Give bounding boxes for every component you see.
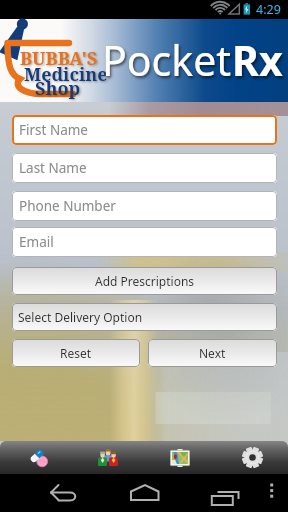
button[interactable]: First Name [12, 115, 277, 145]
staticText: 4:29 [256, 1, 281, 18]
button[interactable]: Email [12, 227, 277, 257]
button[interactable]: Recent apps [172, 474, 258, 512]
staticText: Last Name [19, 159, 87, 177]
staticText: Reset [60, 345, 92, 361]
staticText: Next [199, 345, 226, 361]
button[interactable]: Settings [216, 441, 288, 474]
button[interactable]: Select Delivery Option [12, 303, 277, 331]
button[interactable]: More options [258, 474, 288, 512]
staticText: Medicine [24, 62, 108, 87]
button[interactable]: Last Name [12, 153, 277, 183]
button[interactable]: Phone Number [12, 191, 277, 221]
button[interactable]: Family [72, 441, 144, 474]
button[interactable]: Reset [12, 339, 140, 367]
staticText: Pocket [102, 32, 232, 88]
button[interactable]: Add Prescriptions [12, 267, 277, 295]
button[interactable]: Back [0, 474, 86, 512]
button[interactable]: Prescriptions [0, 441, 72, 474]
button[interactable]: Home [86, 474, 172, 512]
staticText: Select Delivery Option [18, 309, 143, 325]
button[interactable]: Map [144, 441, 216, 474]
staticText: Rx [232, 32, 283, 88]
staticText: Add Prescriptions [95, 273, 195, 289]
staticText: BUBBA'S [20, 46, 98, 71]
staticText: First Name [19, 121, 88, 139]
button[interactable]: Next [148, 339, 277, 367]
staticText: Email [19, 233, 54, 251]
staticText: Shop [35, 76, 81, 101]
staticText: Phone Number [19, 197, 116, 215]
